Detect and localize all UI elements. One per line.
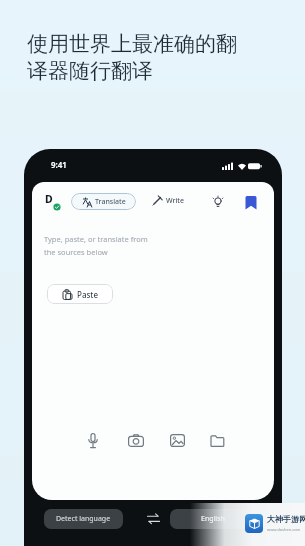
staticText: D bbox=[45, 192, 53, 206]
button[interactable] bbox=[87, 433, 99, 451]
button[interactable]: Write bbox=[151, 195, 185, 207]
staticText: Detect language bbox=[56, 514, 111, 524]
staticText: 大神手游网 bbox=[267, 514, 305, 524]
button[interactable]: English bbox=[170, 509, 256, 529]
button[interactable] bbox=[210, 435, 225, 447]
staticText: English bbox=[201, 514, 225, 524]
staticText: 使用世界上最准确的翻 译器随行翻译 bbox=[27, 31, 237, 84]
button[interactable] bbox=[128, 434, 144, 447]
button[interactable] bbox=[212, 196, 224, 210]
staticText: 9:41 bbox=[51, 159, 67, 170]
staticText: www.dashen.com bbox=[267, 527, 301, 532]
button[interactable] bbox=[146, 513, 161, 525]
staticText: Translate bbox=[95, 197, 126, 207]
staticText: Paste bbox=[77, 289, 98, 300]
staticText: Type, paste, or translate from the sourc… bbox=[44, 234, 148, 257]
button[interactable]: Detect language bbox=[44, 509, 123, 529]
button[interactable] bbox=[245, 196, 257, 210]
staticText: Write bbox=[166, 196, 185, 206]
button[interactable] bbox=[170, 434, 185, 447]
button[interactable]: Translate bbox=[71, 193, 136, 210]
button[interactable]: Paste bbox=[47, 284, 113, 304]
